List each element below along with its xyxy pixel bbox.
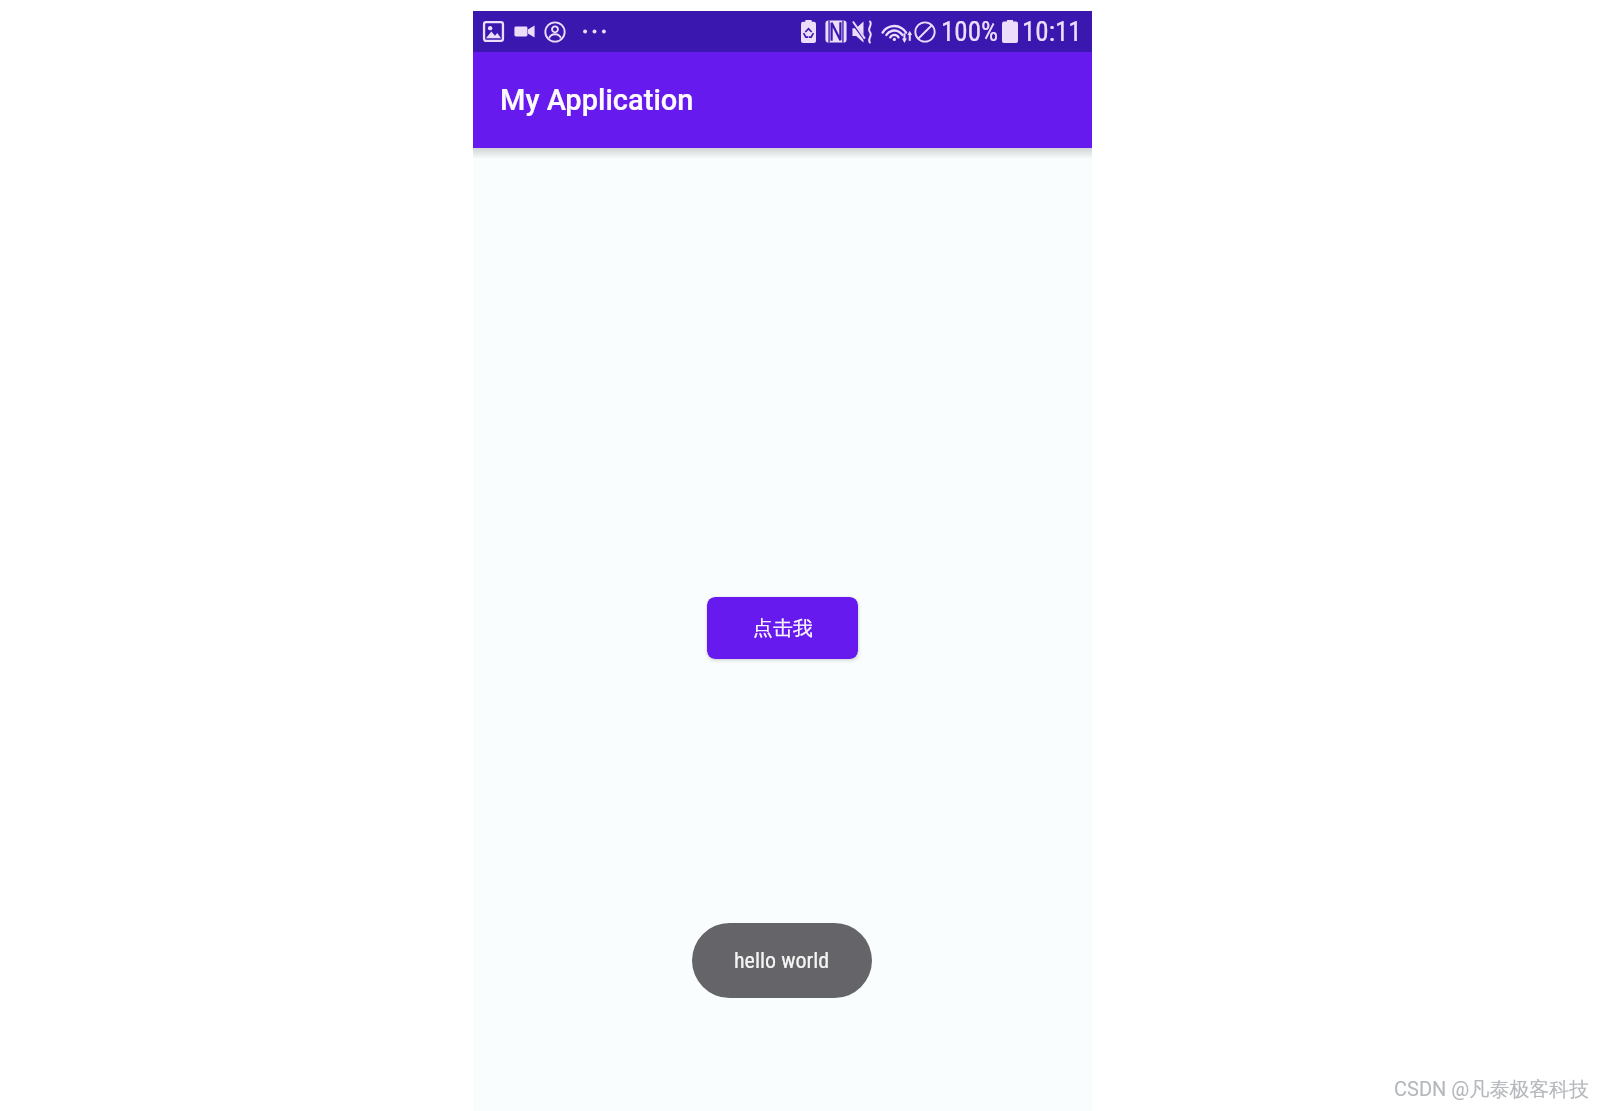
other: Wi-Fi: [884, 21, 912, 43]
other: Screen recorder: [514, 21, 535, 42]
other: Do not disturb: [914, 21, 936, 43]
other: Battery saver: [801, 20, 816, 43]
other: NFC: [825, 20, 847, 43]
staticText: 10:11: [1022, 16, 1082, 48]
staticText: 点击我: [753, 616, 813, 641]
other: Silent mode: [852, 21, 875, 43]
button[interactable]: 点击我: [707, 597, 858, 659]
other: More notifications: [583, 21, 606, 42]
staticText: CSDN @凡泰极客科技: [1394, 1077, 1590, 1102]
staticText: My Application: [500, 83, 694, 117]
other: Account: [544, 21, 566, 43]
other: Battery: [1002, 20, 1018, 43]
other: Screenshot: [483, 21, 504, 42]
staticText: hello world: [734, 948, 830, 974]
staticText: 100%: [941, 16, 999, 48]
